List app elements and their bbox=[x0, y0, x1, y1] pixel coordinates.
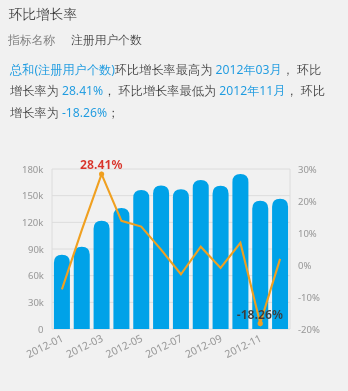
staticText: 指标名称 bbox=[8, 33, 56, 48]
staticText: 环比增长率 bbox=[9, 6, 77, 23]
staticText: 注册用户个数 bbox=[71, 33, 142, 48]
staticText: 总和(注册用户个数)环比增长率最高为 2012年03月， 环比增长率为 28.4… bbox=[10, 61, 330, 121]
